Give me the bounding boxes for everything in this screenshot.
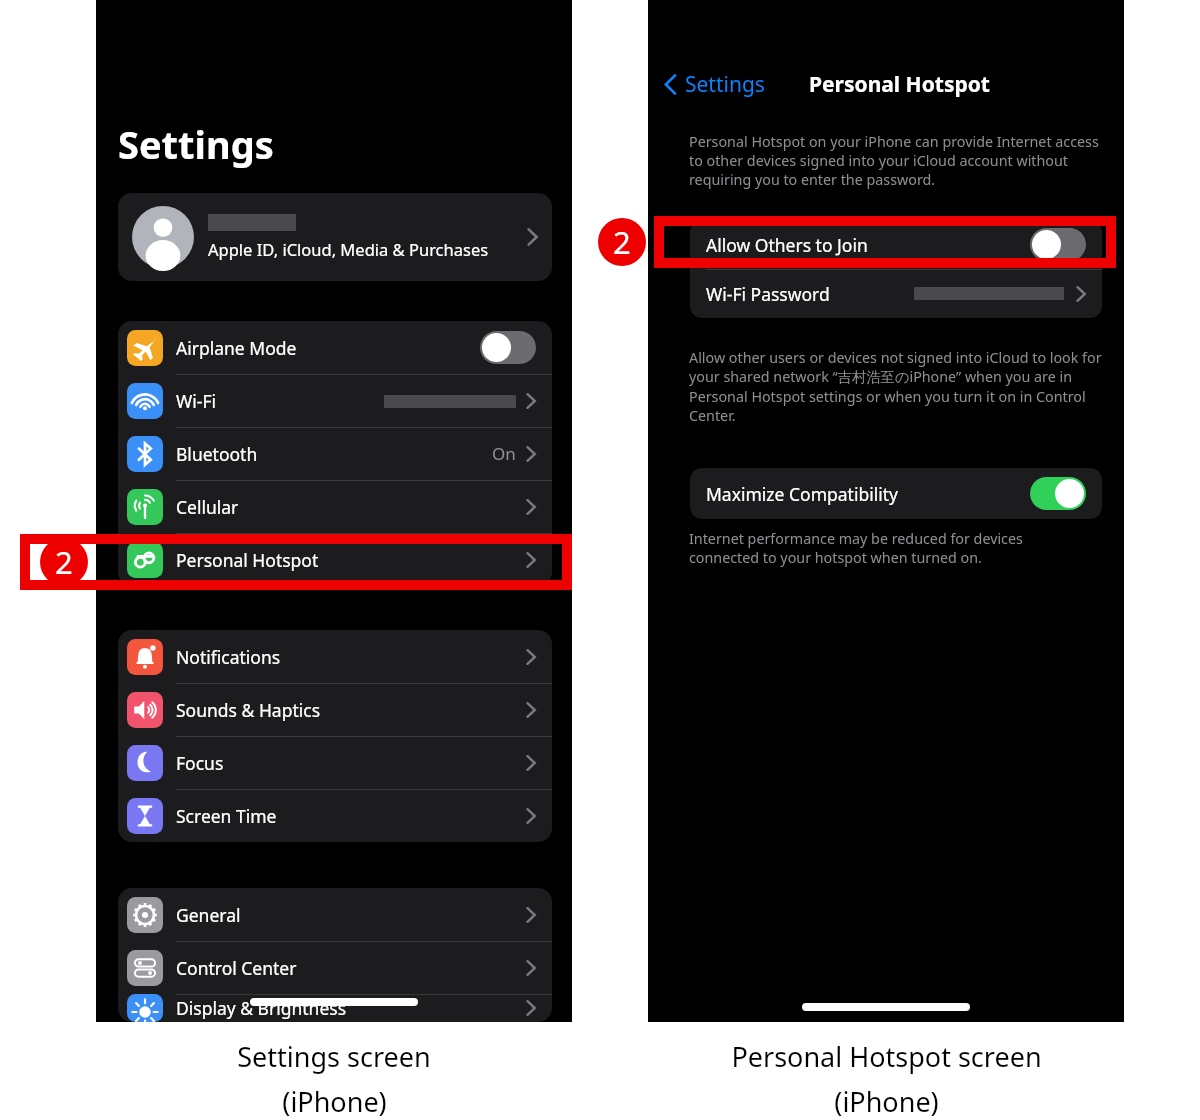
staticText: Sounds & Haptics [176, 698, 321, 722]
button[interactable]: Focus [118, 736, 552, 789]
staticText: 2 [613, 221, 631, 263]
button[interactable]: Wi-Fi Password [690, 269, 1102, 318]
staticText: On [492, 442, 516, 465]
button[interactable]: Control Center [118, 941, 552, 994]
staticText: Focus [176, 751, 224, 775]
staticText: Personal Hotspot [176, 548, 319, 572]
staticText: Wi-Fi [176, 389, 217, 413]
button[interactable]: Sounds & Haptics [118, 683, 552, 736]
staticText: Screen Time [176, 804, 277, 828]
button[interactable]: Notifications [118, 630, 552, 683]
staticText: Personal Hotspot screen [731, 1038, 1042, 1075]
button[interactable]: Airplane Mode [118, 321, 552, 374]
staticText: Personal Hotspot on your iPhone can prov… [689, 132, 1101, 189]
staticText: Settings [118, 118, 274, 170]
staticText: Internet performance may be reduced for … [689, 529, 1089, 567]
button[interactable]: Apple ID, iCloud, Media & Purchases [118, 193, 552, 281]
staticText: 2 [55, 541, 73, 583]
staticText: Personal Hotspot [809, 70, 990, 99]
button[interactable]: Personal Hotspot [118, 533, 552, 586]
staticText: Maximize Compatibility [706, 482, 898, 506]
button[interactable]: Wi-Fi [118, 374, 552, 427]
button[interactable]: Display & Brightness [118, 994, 552, 1022]
button[interactable]: Bluetooth [118, 427, 552, 480]
staticText: Airplane Mode [176, 336, 297, 360]
staticText: Allow Others to Join [706, 233, 868, 257]
staticText: Allow other users or devices not signed … [689, 348, 1107, 425]
staticText: Settings screen [237, 1038, 431, 1075]
staticText: Bluetooth [176, 442, 258, 466]
button[interactable]: Off [1030, 228, 1086, 261]
button[interactable]: Screen Time [118, 789, 552, 842]
staticText: General [176, 903, 241, 927]
button[interactable]: Settings [660, 66, 769, 103]
staticText: Apple ID, iCloud, Media & Purchases [208, 238, 489, 260]
button[interactable]: Off [480, 331, 536, 364]
staticText: Cellular [176, 495, 239, 519]
button[interactable]: On [1030, 477, 1086, 510]
button[interactable]: Allow Others to Join [690, 220, 1102, 269]
button[interactable]: Maximize Compatibility [690, 468, 1102, 519]
button[interactable]: General [118, 888, 552, 941]
staticText: Wi-Fi Password [706, 282, 830, 306]
staticText: Settings [685, 70, 765, 99]
staticText: (iPhone) [282, 1083, 387, 1120]
staticText: (iPhone) [834, 1083, 939, 1120]
button[interactable]: Cellular [118, 480, 552, 533]
staticText: Display & Brightness [176, 996, 347, 1020]
staticText: Notifications [176, 645, 281, 669]
staticText: Control Center [176, 956, 297, 980]
